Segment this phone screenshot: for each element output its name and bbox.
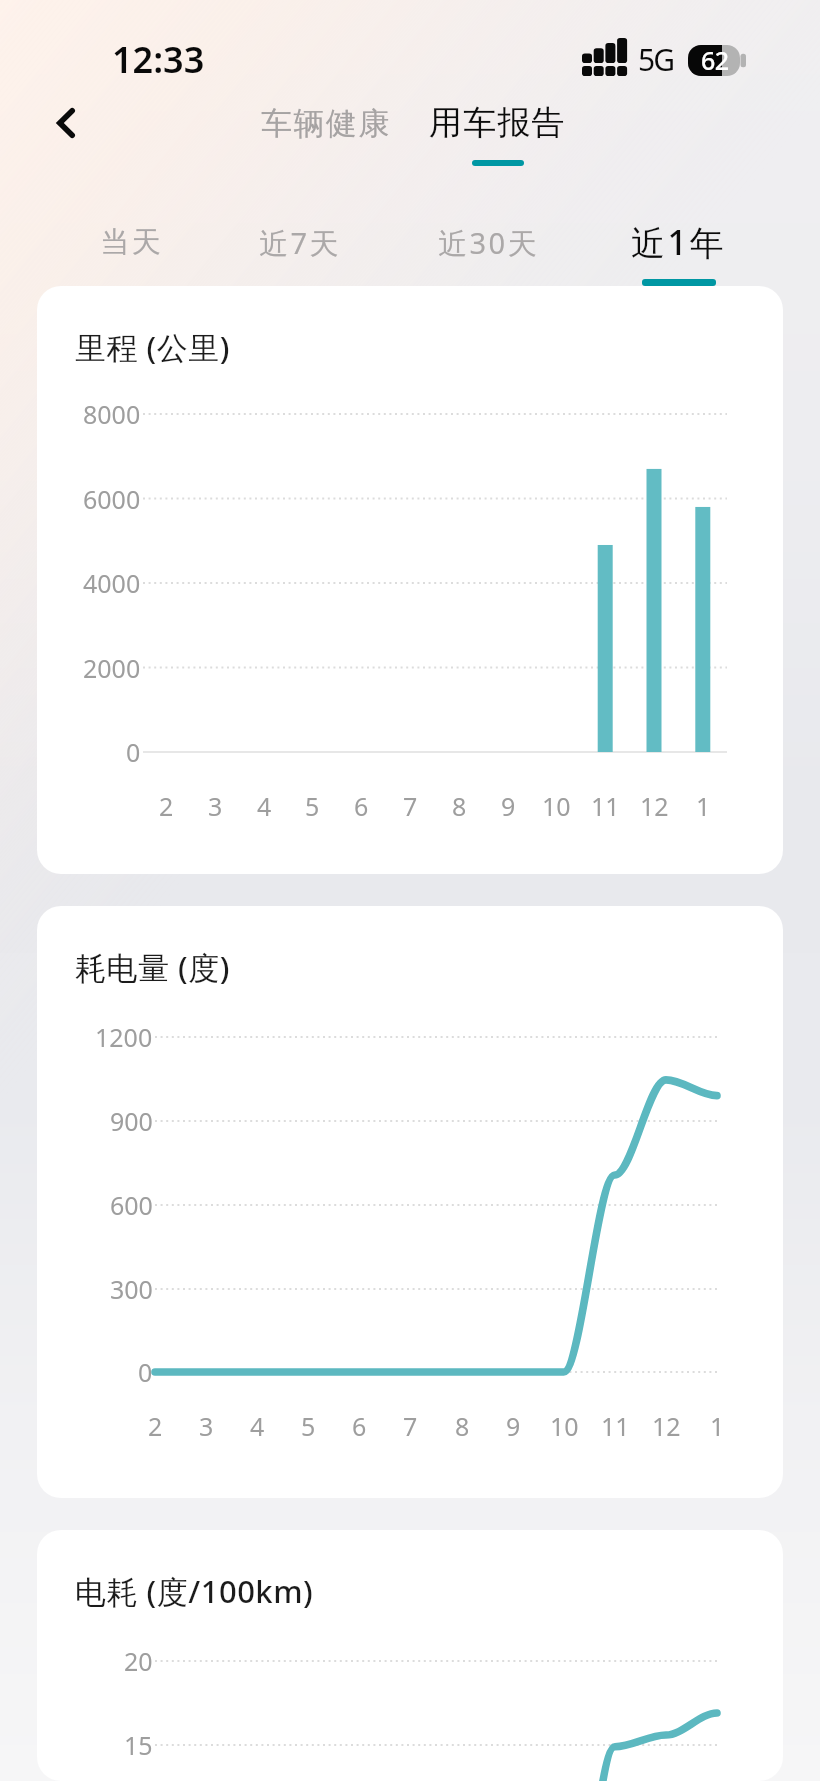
staticText: 0 <box>126 735 141 769</box>
staticText: 12:33 <box>112 35 205 84</box>
staticText: 11 <box>601 1409 630 1443</box>
staticText: 2 <box>159 789 174 823</box>
staticText: 10 <box>542 789 571 823</box>
staticText: 8 <box>452 789 467 823</box>
staticText: 5 <box>305 789 320 823</box>
button[interactable]: Back <box>31 95 97 161</box>
button[interactable]: 当天 <box>44 191 216 286</box>
staticText: 耗电量 (度) <box>75 946 230 988</box>
staticText: 3 <box>199 1409 214 1443</box>
staticText: 12 <box>640 789 669 823</box>
staticText: 里程 (公里) <box>75 326 230 368</box>
staticText: 1 <box>710 1409 725 1443</box>
staticText: 300 <box>110 1272 153 1306</box>
staticText: 2000 <box>83 651 141 685</box>
staticText: 电耗 (度/100km) <box>75 1570 314 1612</box>
staticText: 1 <box>696 789 711 823</box>
staticText: 7 <box>403 789 418 823</box>
staticText: 20 <box>124 1644 153 1678</box>
staticText: 近1年 <box>631 219 726 265</box>
staticText: 0 <box>138 1355 153 1389</box>
staticText: 4000 <box>83 566 141 600</box>
staticText: 6 <box>352 1409 367 1443</box>
button[interactable]: 用车报告 <box>414 94 580 172</box>
staticText: 62 <box>701 43 729 77</box>
staticText: 10 <box>550 1409 579 1443</box>
staticText: 12 <box>652 1409 681 1443</box>
staticText: 5 <box>301 1409 316 1443</box>
staticText: 5G <box>638 39 674 80</box>
staticText: 9 <box>506 1409 521 1443</box>
staticText: 9 <box>501 789 516 823</box>
staticText: 900 <box>110 1104 153 1138</box>
staticText: 2 <box>148 1409 163 1443</box>
staticText: 近30天 <box>438 223 540 263</box>
button[interactable]: 近30天 <box>403 191 575 286</box>
button[interactable]: 近7天 <box>214 191 386 286</box>
staticText: 车辆健康 <box>261 104 391 143</box>
staticText: 4 <box>257 789 272 823</box>
staticText: 600 <box>110 1188 153 1222</box>
staticText: 15 <box>124 1728 153 1762</box>
staticText: 8 <box>455 1409 470 1443</box>
button[interactable]: 近1年 <box>592 191 764 286</box>
staticText: 近7天 <box>259 223 342 263</box>
staticText: 6 <box>354 789 369 823</box>
staticText: 用车报告 <box>429 102 566 144</box>
button[interactable]: 车辆健康 <box>246 94 406 152</box>
staticText: 11 <box>591 789 620 823</box>
staticText: 1200 <box>95 1020 153 1054</box>
staticText: 当天 <box>99 224 162 261</box>
staticText: 3 <box>208 789 223 823</box>
staticText: 7 <box>403 1409 418 1443</box>
staticText: 4 <box>250 1409 265 1443</box>
staticText: 6000 <box>83 482 141 516</box>
staticText: 8000 <box>83 397 141 431</box>
